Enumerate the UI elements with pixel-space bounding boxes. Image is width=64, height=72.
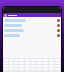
button[interactable] <box>4 19 26 22</box>
button[interactable] <box>4 29 24 32</box>
button[interactable]: Avatar <box>57 34 60 37</box>
button[interactable] <box>4 34 20 37</box>
button[interactable]: Profile <box>4 14 7 17</box>
button[interactable]: Avatar <box>57 24 60 27</box>
button[interactable] <box>4 24 22 27</box>
button[interactable]: Avatar <box>57 29 60 32</box>
button[interactable]: Avatar <box>57 19 60 22</box>
